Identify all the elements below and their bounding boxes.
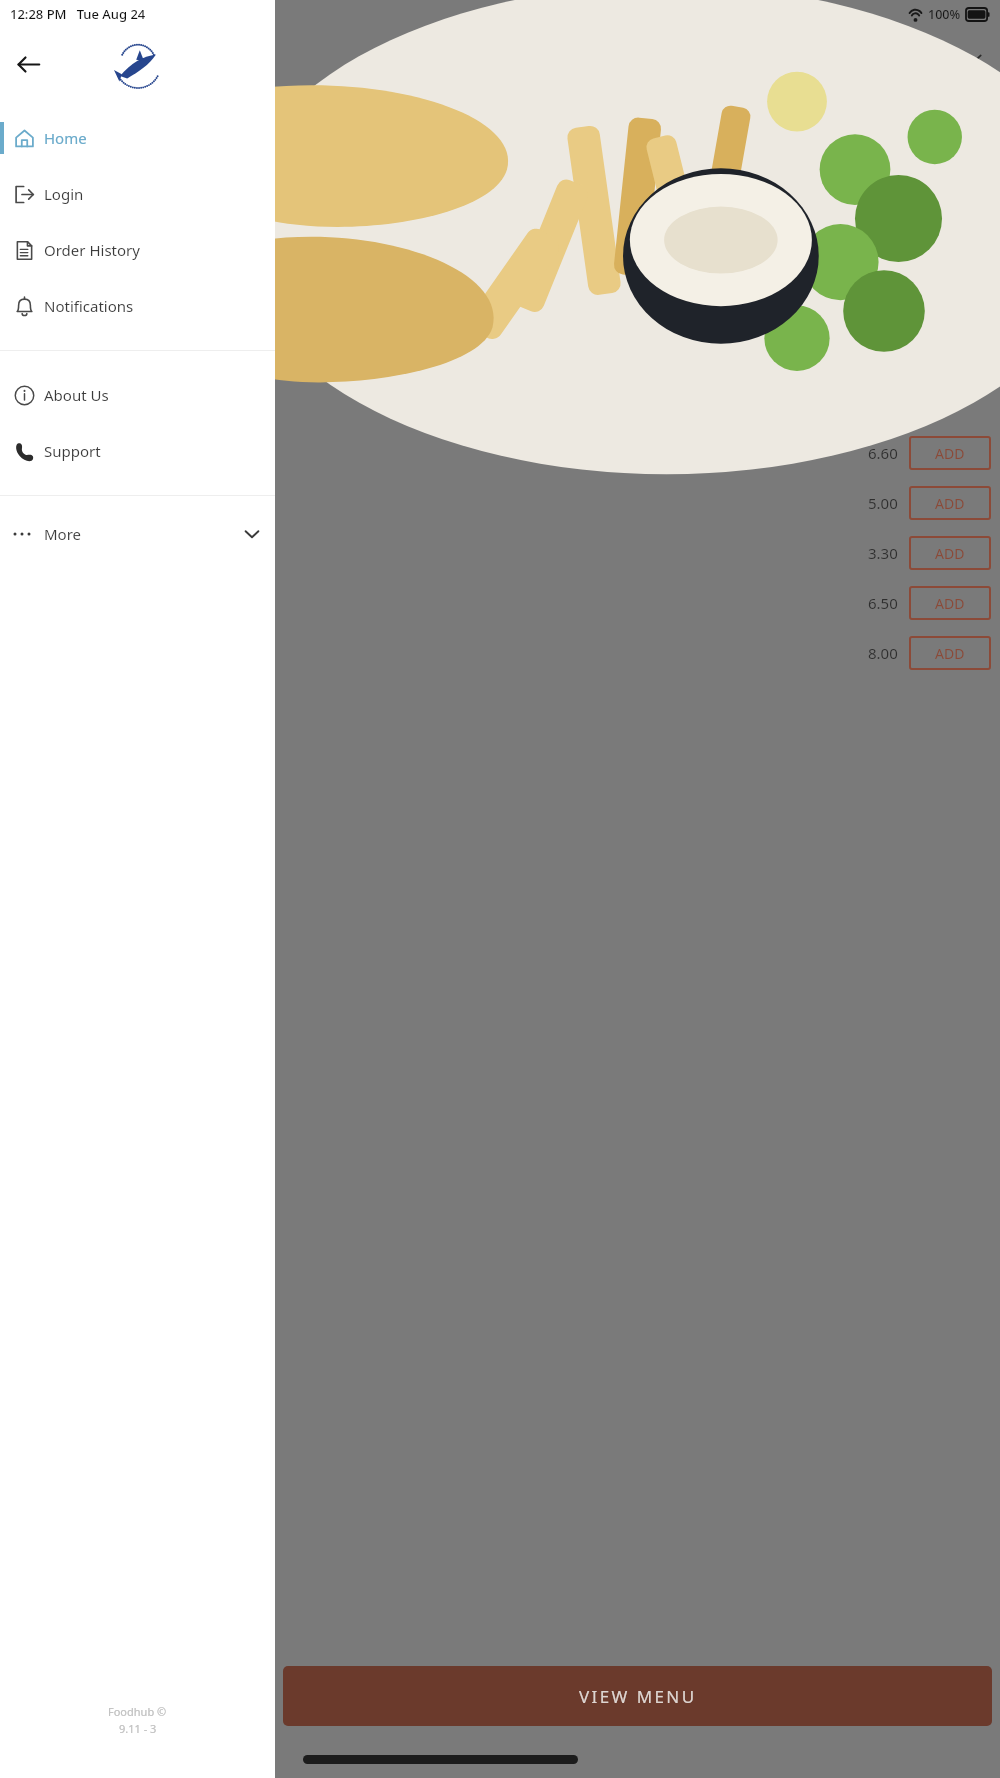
staticText: 12:28 PM Tue Aug 24 [10, 5, 146, 23]
button[interactable]: ADD [909, 636, 991, 670]
staticText: ADD [935, 644, 965, 663]
button[interactable]: Notifications [0, 278, 275, 334]
button[interactable]: More [0, 508, 275, 560]
staticText: Foodhub © [108, 1704, 167, 1719]
button[interactable]: ADD [909, 436, 991, 470]
button[interactable]: ADD [909, 486, 991, 520]
staticText: Login [44, 184, 84, 204]
staticText: 9.11 - 3 [119, 1721, 157, 1736]
staticText: About Us [44, 385, 109, 405]
button[interactable]: ADD [909, 536, 991, 570]
staticText: Order History [44, 240, 140, 260]
button[interactable]: Expand [958, 41, 992, 75]
staticText: 6.60 [868, 443, 898, 463]
staticText: Notifications [44, 296, 134, 316]
button[interactable]: VIEW MENU [283, 1666, 992, 1726]
button[interactable]: Support [0, 423, 275, 479]
button[interactable]: ADD [909, 586, 991, 620]
button[interactable]: Home [0, 110, 275, 166]
staticText: ADD [935, 444, 965, 463]
staticText: More [44, 524, 82, 544]
staticText: 100% [928, 6, 961, 23]
staticText: ADD [935, 594, 965, 613]
button[interactable]: Login [0, 166, 275, 222]
button[interactable]: Cart [912, 35, 958, 81]
staticText: ADD [935, 494, 965, 513]
staticText: Home [44, 128, 87, 148]
staticText: VIEW MENU [579, 1685, 697, 1708]
button[interactable]: About Us [0, 367, 275, 423]
staticText: 3.30 [868, 543, 898, 563]
staticText: 8.00 [868, 643, 898, 663]
button[interactable]: Order History [0, 222, 275, 278]
staticText: 5.00 [868, 493, 898, 513]
staticText: 6.50 [868, 593, 898, 613]
staticText: Support [44, 441, 101, 461]
staticText: ADD [935, 544, 965, 563]
button[interactable]: Back [6, 42, 50, 86]
